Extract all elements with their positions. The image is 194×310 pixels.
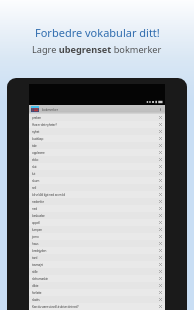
- button[interactable]: appell: [29, 219, 165, 226]
- button[interactable]: stille: [29, 268, 165, 275]
- button[interactable]: Delete bookmark: [158, 150, 163, 155]
- button[interactable]: Delete bookmark: [158, 304, 163, 309]
- staticText: sladrs: [32, 298, 158, 302]
- button[interactable]: preken: [29, 114, 165, 121]
- button[interactable]: Delete bookmark: [158, 213, 163, 218]
- button[interactable]: Delete bookmark: [158, 290, 163, 295]
- button[interactable]: Kan du være så snill å skrive det ned?: [29, 303, 165, 310]
- button[interactable]: Delete bookmark: [158, 157, 163, 162]
- button[interactable]: Delete bookmark: [158, 220, 163, 225]
- staticText: haus: [32, 242, 158, 246]
- button[interactable]: Delete bookmark: [158, 136, 163, 141]
- staticText: appell: [32, 221, 158, 225]
- staticText: Kan du være så snill å skrive det ned?: [32, 305, 158, 309]
- staticText: Forbedre vokabular ditt!: [35, 25, 160, 40]
- staticText: Lagre ubegrenset bokmerker: [32, 43, 162, 56]
- staticText: jomo: [32, 235, 158, 239]
- staticText: bli vr bItil kjpt ned av en bil: [32, 193, 158, 197]
- button[interactable]: Delete bookmark: [158, 178, 163, 183]
- button[interactable]: jomo: [29, 233, 165, 240]
- button[interactable]: beskuelse: [29, 212, 165, 219]
- button[interactable]: Delete bookmark: [158, 115, 163, 120]
- staticText: tavmajrt: [32, 263, 158, 267]
- staticText: snil: [32, 186, 158, 190]
- staticText: bokmerker: [42, 108, 59, 112]
- staticText: bredsjyden: [32, 249, 158, 253]
- button[interactable]: tard: [29, 254, 165, 261]
- button[interactable]: opplevere: [29, 149, 165, 156]
- button[interactable]: Delete bookmark: [158, 206, 163, 211]
- button[interactable]: budskap: [29, 135, 165, 142]
- staticText: lut: [32, 172, 158, 176]
- staticText: budskap: [32, 137, 158, 141]
- button[interactable]: Delete bookmark: [158, 192, 163, 197]
- button[interactable]: Delete bookmark: [158, 269, 163, 274]
- button[interactable]: Delete bookmark: [158, 164, 163, 169]
- staticText: ekko: [32, 158, 158, 162]
- button[interactable]: bli vr bItil kjpt ned av en bil: [29, 191, 165, 198]
- button[interactable]: Hva er det nyheter?: [29, 121, 165, 128]
- staticText: tale: [32, 144, 158, 148]
- button[interactable]: ekko: [29, 156, 165, 163]
- button[interactable]: snil: [29, 184, 165, 191]
- staticText: forfatte: [32, 291, 158, 295]
- button[interactable]: sladrs: [29, 296, 165, 303]
- button[interactable]: Delete bookmark: [158, 241, 163, 246]
- staticText: opplevere: [32, 151, 158, 155]
- button[interactable]: dikte: [29, 282, 165, 289]
- staticText: ned: [32, 207, 158, 211]
- button[interactable]: nyhet: [29, 128, 165, 135]
- button[interactable]: lumpen: [29, 226, 165, 233]
- staticText: slut: [32, 165, 158, 169]
- button[interactable]: Delete bookmark: [158, 129, 163, 134]
- staticText: lumpen: [32, 228, 158, 232]
- button[interactable]: bokmerker: [29, 105, 165, 114]
- button[interactable]: slut: [29, 163, 165, 170]
- staticText: dikte: [32, 284, 158, 288]
- button[interactable]: Delete bookmark: [158, 122, 163, 127]
- button[interactable]: Delete bookmark: [158, 248, 163, 253]
- button[interactable]: tavmajrt: [29, 261, 165, 268]
- button[interactable]: Delete bookmark: [158, 283, 163, 288]
- button[interactable]: Delete bookmark: [158, 262, 163, 267]
- button[interactable]: Delete bookmark: [158, 185, 163, 190]
- staticText: Hva er det nyheter?: [32, 123, 158, 127]
- button[interactable]: lut: [29, 170, 165, 177]
- staticText: slelrumaskin: [32, 277, 158, 281]
- button[interactable]: Delete bookmark: [158, 297, 163, 302]
- staticText: nyhet: [32, 130, 158, 134]
- button[interactable]: Delete bookmark: [158, 276, 163, 281]
- button[interactable]: nedenfor: [29, 198, 165, 205]
- button[interactable]: slelrumaskin: [29, 275, 165, 282]
- button[interactable]: forfatte: [29, 289, 165, 296]
- button[interactable]: haus: [29, 240, 165, 247]
- button[interactable]: Delete bookmark: [158, 234, 163, 239]
- button[interactable]: Delete bookmark: [158, 255, 163, 260]
- button[interactable]: bredsjyden: [29, 247, 165, 254]
- staticText: tard: [32, 256, 158, 260]
- staticText: skum: [32, 179, 158, 183]
- button[interactable]: More options: [158, 107, 163, 112]
- button[interactable]: Delete bookmark: [158, 227, 163, 232]
- staticText: nedenfor: [32, 200, 158, 204]
- button[interactable]: ned: [29, 205, 165, 212]
- button[interactable]: skum: [29, 177, 165, 184]
- button[interactable]: Delete bookmark: [158, 171, 163, 176]
- staticText: preken: [32, 116, 158, 120]
- button[interactable]: Delete bookmark: [158, 199, 163, 204]
- staticText: beskuelse: [32, 214, 158, 218]
- staticText: stille: [32, 270, 158, 274]
- button[interactable]: Delete bookmark: [158, 143, 163, 148]
- button[interactable]: tale: [29, 142, 165, 149]
